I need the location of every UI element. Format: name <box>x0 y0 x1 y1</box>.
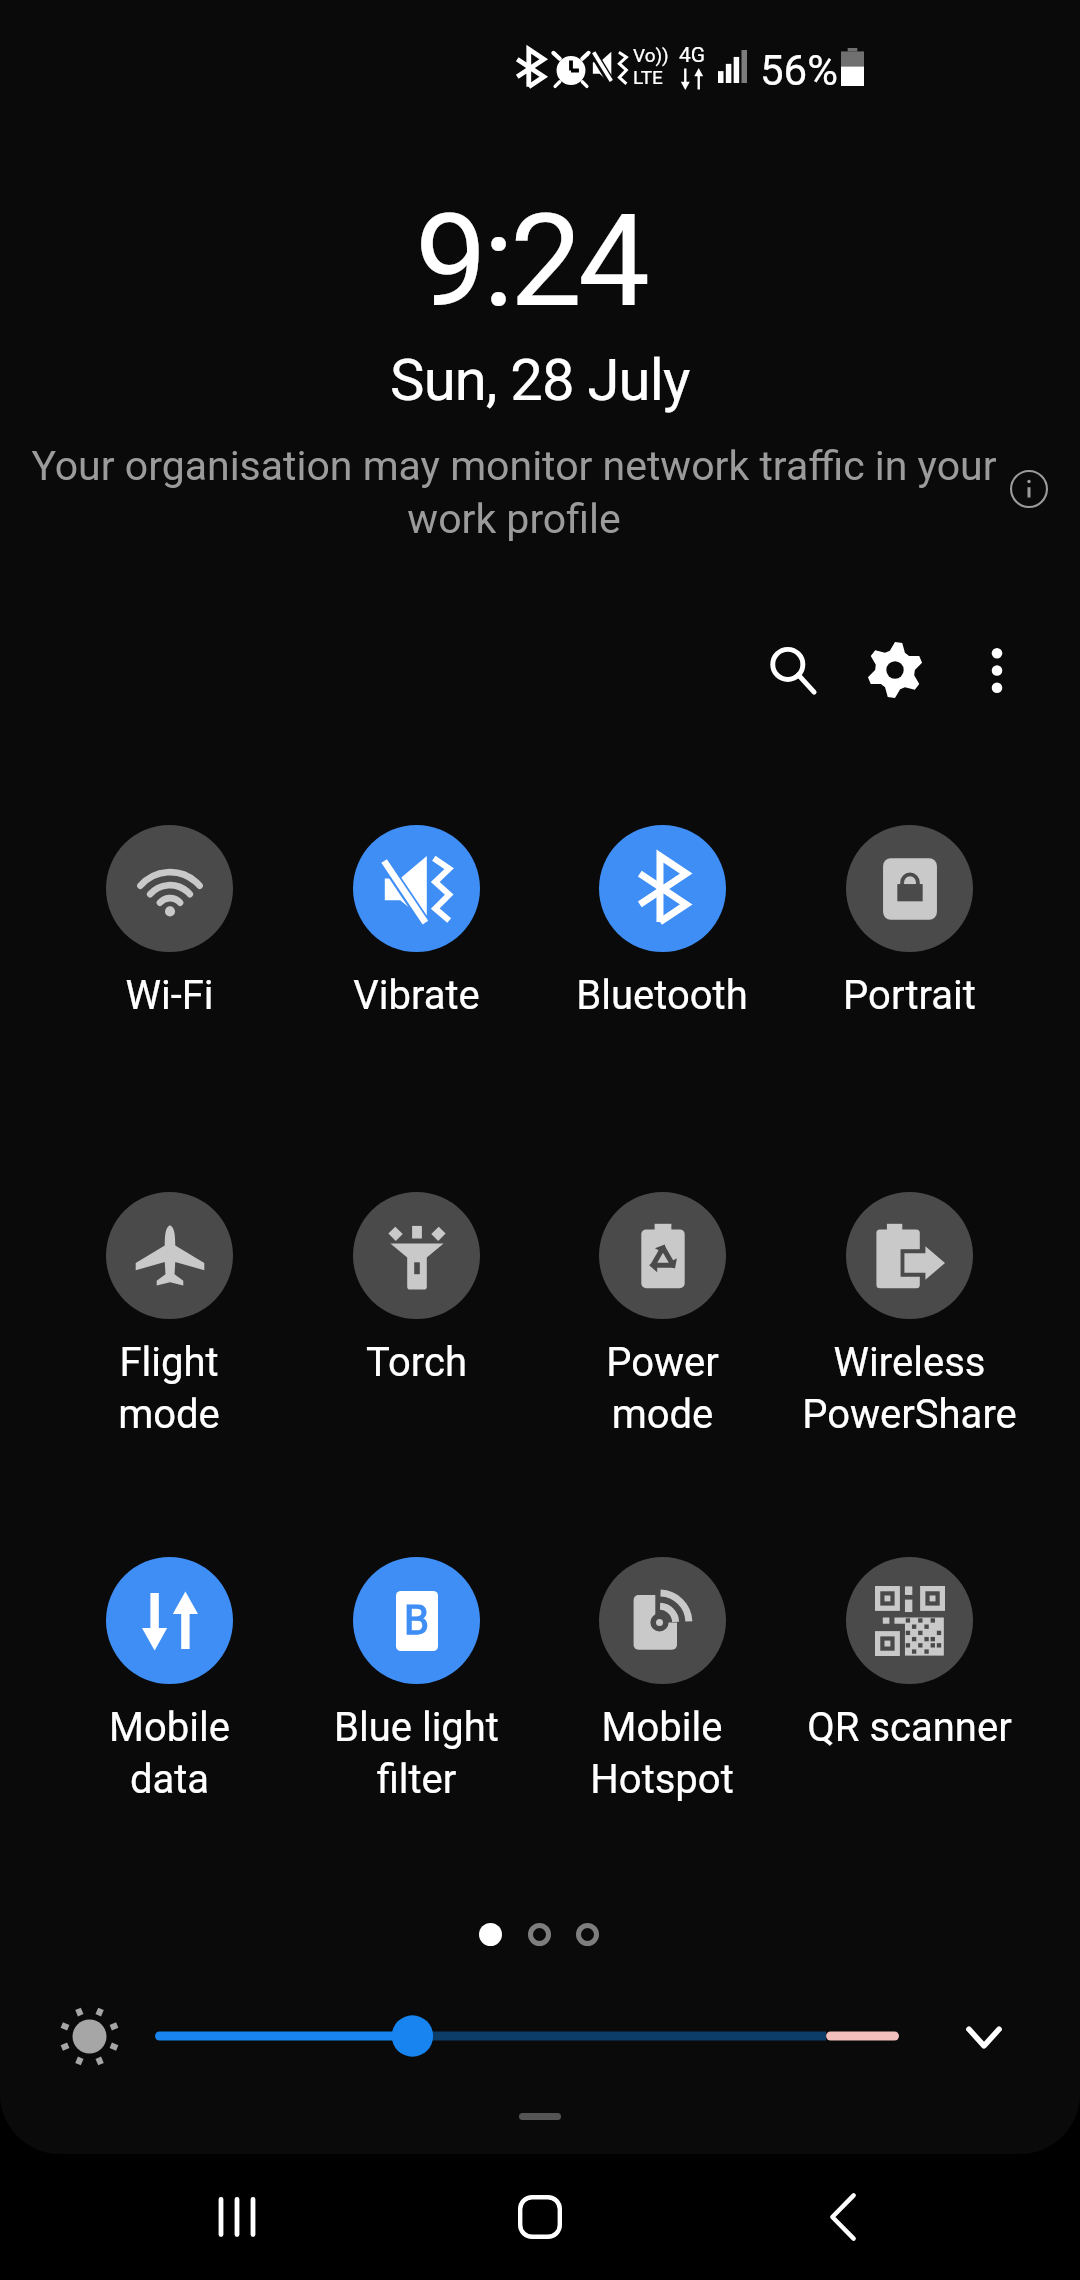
staticText: Power mode <box>606 1339 719 1438</box>
staticText: Vibrate <box>353 972 480 1019</box>
button[interactable]: Home <box>480 2157 600 2277</box>
button[interactable]: Bluetooth <box>537 815 787 1019</box>
button[interactable]: Collapse <box>947 2000 1021 2074</box>
staticText: Bluetooth <box>576 972 748 1019</box>
staticText: Blue light filter <box>334 1704 499 1803</box>
staticText: Vo)) <box>633 44 669 66</box>
staticText: LTE <box>633 66 663 88</box>
button[interactable]: Mobile Hotspot <box>537 1547 787 1803</box>
button[interactable]: QR scanner <box>784 1547 1034 1751</box>
staticText: Torch <box>366 1339 467 1386</box>
button[interactable]: Mobile data <box>44 1547 294 1803</box>
button[interactable]: Settings <box>849 624 941 716</box>
staticText: Mobile Hotspot <box>590 1704 734 1803</box>
staticText: Mobile data <box>109 1704 230 1803</box>
staticText: Wireless PowerShare <box>802 1339 1017 1438</box>
button[interactable]: Wireless PowerShare <box>784 1182 1034 1438</box>
staticText: 56% <box>760 46 838 95</box>
staticText: Your organisation may monitor network tr… <box>14 442 1014 543</box>
button[interactable]: Torch <box>291 1182 541 1386</box>
staticText: 9:24 <box>415 186 646 336</box>
button[interactable]: Wi-Fi <box>44 815 294 1019</box>
button[interactable]: Search <box>746 624 838 716</box>
staticText: Flight mode <box>118 1339 220 1438</box>
staticText: B <box>404 1597 429 1644</box>
button[interactable]: Back <box>783 2157 903 2277</box>
button[interactable]: Recents <box>177 2157 297 2277</box>
staticText: QR scanner <box>807 1704 1012 1751</box>
button[interactable]: Power mode <box>537 1182 787 1438</box>
button[interactable]: Vibrate <box>291 815 541 1019</box>
button[interactable]: Information <box>995 455 1063 523</box>
button[interactable]: Flight mode <box>44 1182 294 1438</box>
button[interactable]: More options <box>951 624 1043 716</box>
staticText: Sun, 28 July <box>390 346 690 414</box>
button[interactable]: Portrait <box>784 815 1034 1019</box>
staticText: 4G <box>679 43 706 68</box>
button[interactable]: B <box>291 1547 541 1803</box>
staticText: Wi-Fi <box>125 972 214 1019</box>
staticText: Portrait <box>843 972 976 1019</box>
